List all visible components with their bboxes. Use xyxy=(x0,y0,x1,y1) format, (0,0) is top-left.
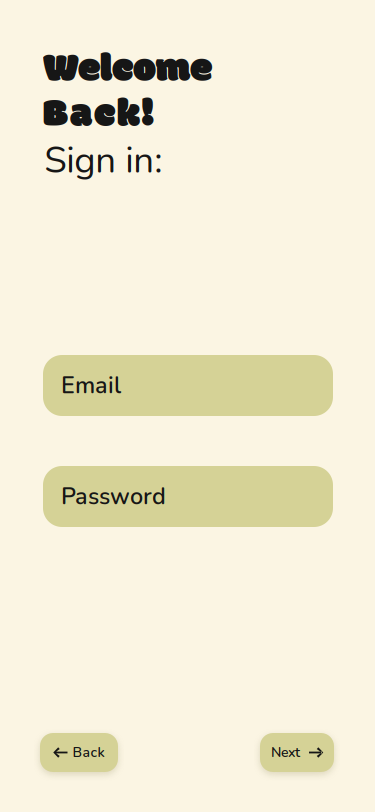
button[interactable]: Next xyxy=(260,733,334,772)
button[interactable]: Password xyxy=(43,466,333,527)
staticText: Sign in: xyxy=(44,135,162,185)
staticText: Back xyxy=(72,743,104,762)
staticText: Welcome xyxy=(43,40,212,101)
staticText: Next xyxy=(271,743,300,762)
button[interactable]: Back xyxy=(40,733,118,772)
staticText: Email xyxy=(61,370,121,401)
staticText: Password xyxy=(61,481,166,512)
button[interactable]: Email xyxy=(43,355,333,416)
staticText: Back! xyxy=(43,85,153,146)
